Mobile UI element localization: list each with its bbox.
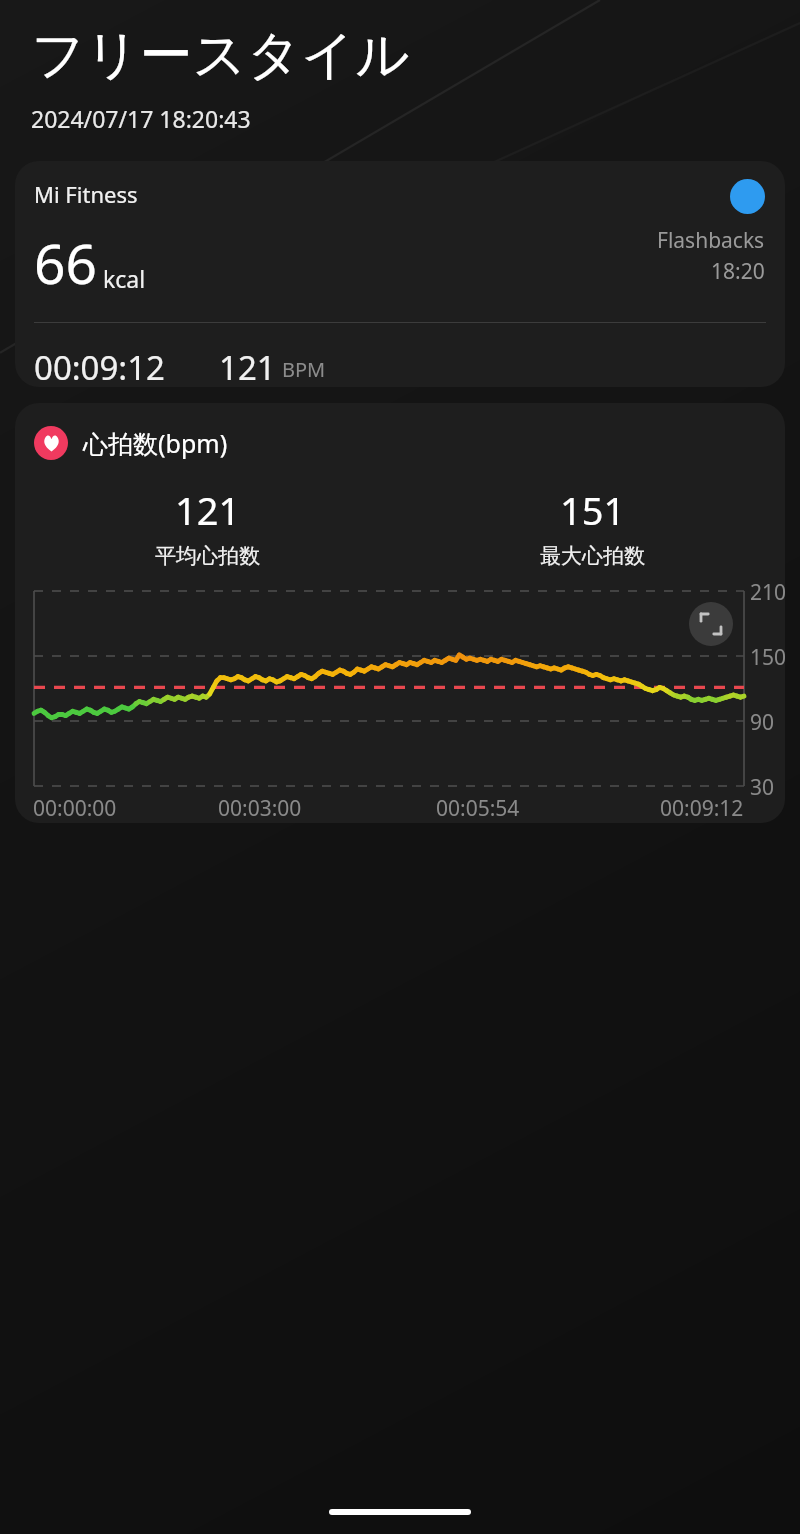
staticText: 平均心拍数	[155, 543, 260, 569]
staticText: 00:00:00	[33, 794, 117, 823]
staticText: 00:09:12	[34, 345, 165, 387]
button[interactable]: 151	[400, 484, 785, 569]
staticText: 2024/07/17 18:20:43	[31, 103, 251, 134]
button[interactable]: 121	[15, 484, 400, 569]
staticText: 最大心拍数	[540, 543, 645, 569]
staticText: Mi Fitness	[34, 179, 138, 209]
staticText: 66	[34, 225, 97, 300]
button[interactable]: 心拍数(bpm)	[15, 403, 785, 823]
button[interactable]: Mi Fitness	[15, 161, 785, 387]
staticText: 心拍数(bpm)	[83, 426, 228, 460]
staticText: 121	[175, 484, 241, 536]
staticText: 150	[750, 643, 785, 672]
staticText: 151	[560, 484, 626, 536]
staticText: フリースタイル	[31, 22, 410, 89]
staticText: BPM	[282, 356, 326, 383]
staticText: Flashbacks	[657, 226, 765, 255]
staticText: 90	[750, 708, 775, 737]
staticText: 121	[219, 345, 276, 387]
staticText: 00:03:00	[218, 794, 302, 823]
staticText: 00:05:54	[436, 794, 520, 823]
staticText: 00:09:12	[660, 794, 744, 823]
staticText: 210	[750, 578, 785, 607]
button[interactable]: Expand chart	[689, 602, 733, 646]
staticText: 18:20	[711, 257, 765, 286]
other: Flashbacks	[730, 179, 765, 214]
staticText: kcal	[103, 263, 146, 294]
staticText: 30	[750, 773, 775, 802]
